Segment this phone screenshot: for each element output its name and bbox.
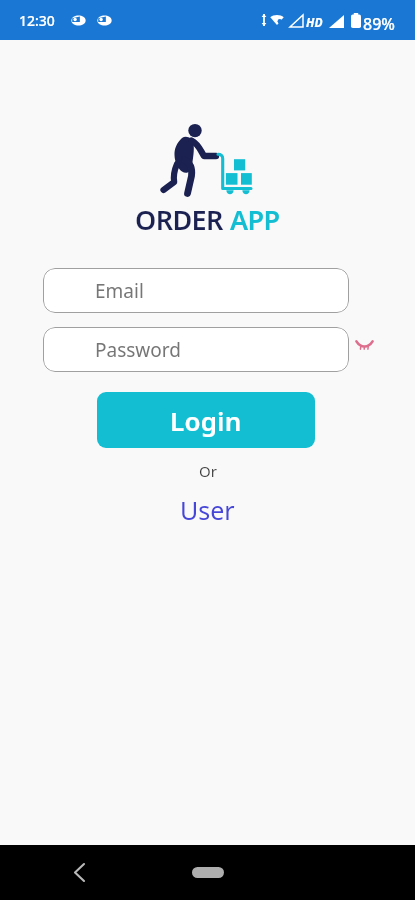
button[interactable]: Password [43, 327, 349, 372]
staticText: HD [306, 14, 323, 30]
staticText: ORDER [135, 201, 230, 238]
button[interactable]: Show password [352, 332, 376, 356]
staticText: 89% [363, 13, 395, 35]
button[interactable]: User [170, 491, 245, 529]
staticText: APP [230, 201, 280, 238]
staticText: Or [199, 461, 217, 481]
staticText: Email [95, 278, 144, 304]
button[interactable]: Login [97, 392, 315, 448]
staticText: 12:30 [19, 11, 55, 30]
staticText: User [180, 493, 235, 527]
staticText: Login [170, 403, 242, 438]
staticText: Password [95, 337, 181, 363]
button[interactable]: Back [64, 857, 94, 887]
button[interactable]: Home [192, 867, 224, 878]
button[interactable]: Email [43, 268, 349, 313]
